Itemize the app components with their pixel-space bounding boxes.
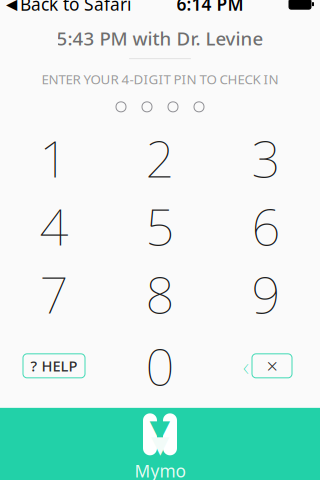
button[interactable]: 3 xyxy=(213,124,319,192)
staticText: 1 xyxy=(39,124,68,191)
staticText: ENTER YOUR 4-DIGIT PIN TO CHECK IN xyxy=(41,70,278,88)
staticText: 7 xyxy=(39,260,68,327)
button[interactable]: 1 xyxy=(1,124,107,192)
staticText: 8 xyxy=(145,260,174,327)
staticText: Back to Safari xyxy=(20,0,131,16)
staticText: ? HELP xyxy=(30,356,77,376)
staticText: ‹ xyxy=(243,348,249,383)
staticText: 4 xyxy=(39,192,68,259)
staticText: 2 xyxy=(145,124,174,191)
button[interactable]: 4 xyxy=(1,192,107,260)
button[interactable]: 5 xyxy=(107,192,213,260)
button[interactable]: 7 xyxy=(1,260,107,328)
staticText: ▼ xyxy=(149,414,170,444)
staticText: 5:43 PM with Dr. Levine xyxy=(56,26,263,51)
staticText: 0 xyxy=(145,332,174,399)
button[interactable]: 0 xyxy=(107,332,213,400)
button[interactable]: Delete xyxy=(238,354,294,378)
staticText: ◀ xyxy=(6,0,17,12)
staticText: 9 xyxy=(251,260,280,327)
button[interactable]: 6 xyxy=(213,192,319,260)
staticText: 6 xyxy=(251,192,280,259)
staticText: ▼ xyxy=(151,431,169,458)
button[interactable]: ◀ xyxy=(0,0,131,19)
button[interactable]: 8 xyxy=(107,260,213,328)
staticText: × xyxy=(266,353,277,379)
staticText: 3 xyxy=(251,124,280,191)
staticText: Mymo xyxy=(134,459,185,480)
button[interactable]: 9 xyxy=(213,260,319,328)
button[interactable]: 2 xyxy=(107,124,213,192)
button[interactable]: ? HELP xyxy=(23,354,85,378)
staticText: 6:14 PM xyxy=(176,0,243,16)
staticText: 5 xyxy=(145,192,174,259)
